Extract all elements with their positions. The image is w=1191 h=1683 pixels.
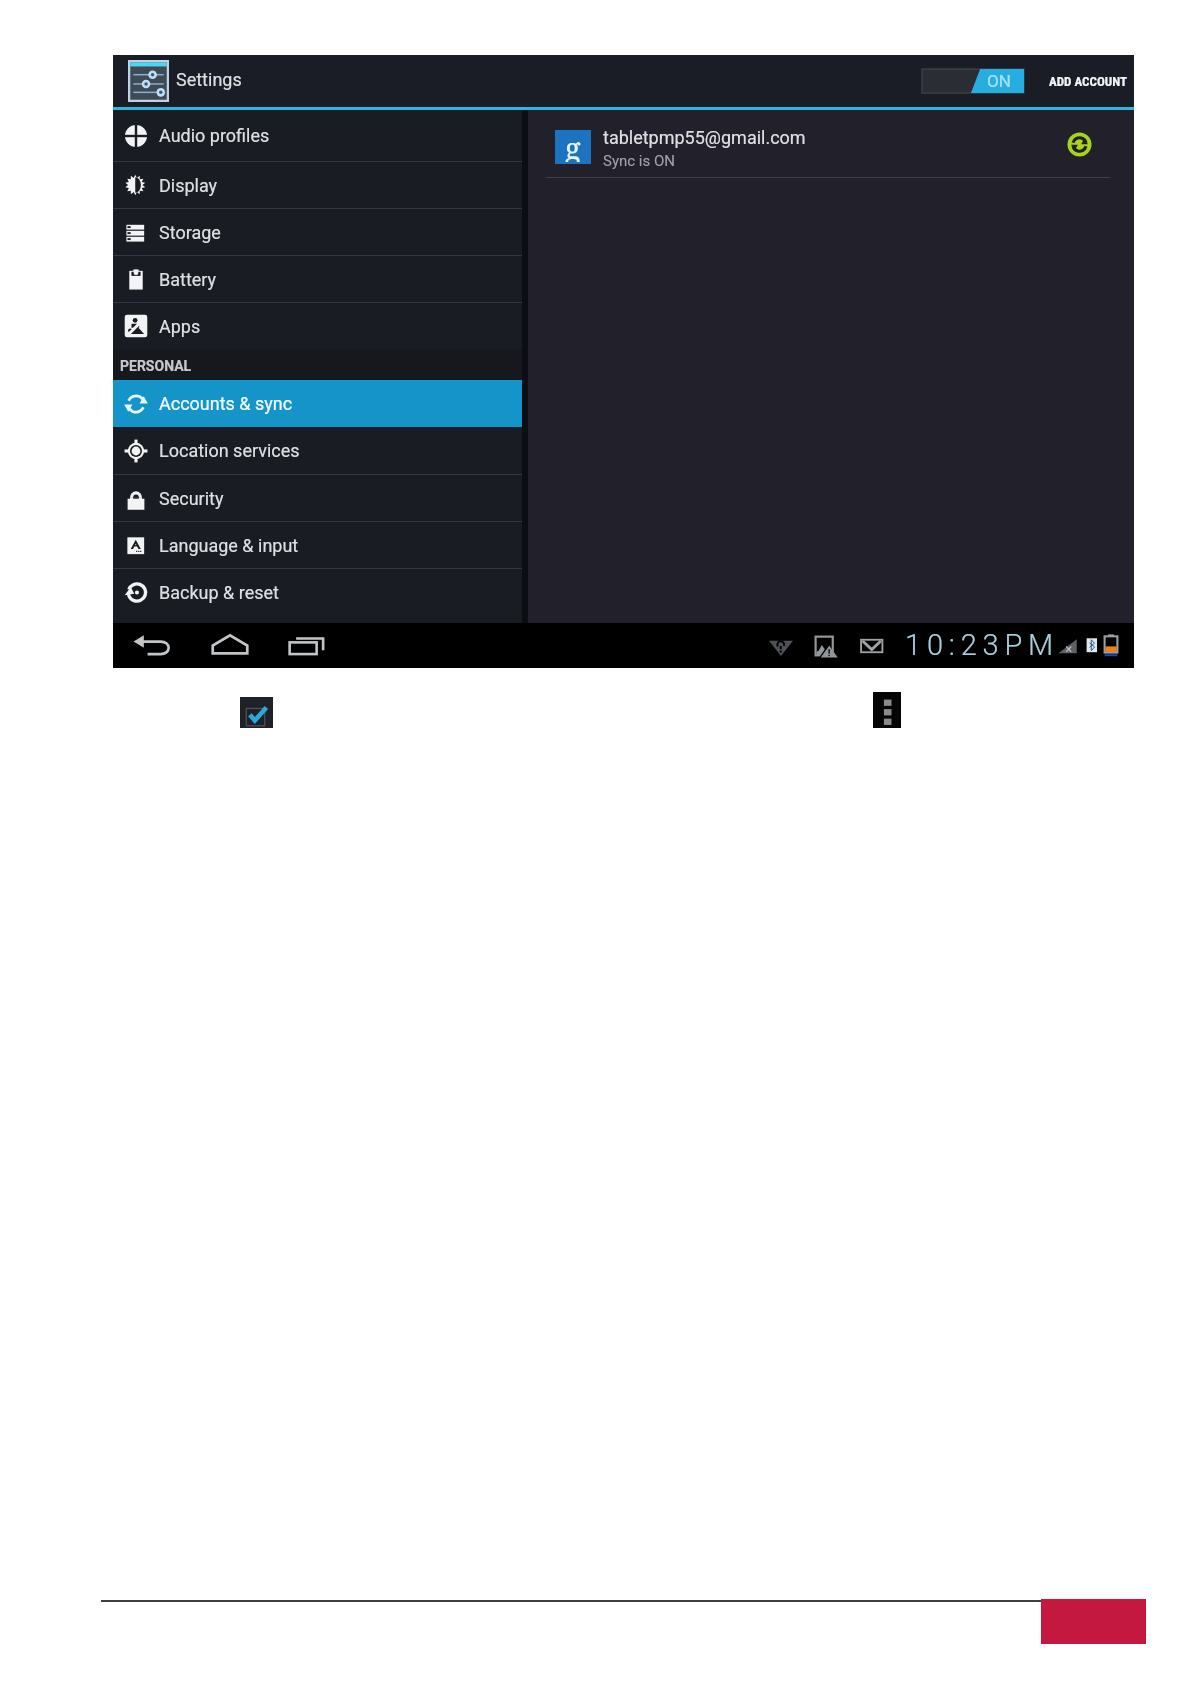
staticText: Security — [159, 488, 224, 509]
button[interactable]: Checkbox checked — [240, 697, 273, 728]
staticText: Settings — [176, 69, 242, 90]
button[interactable]: Settings — [128, 60, 169, 102]
staticText: Language & input — [159, 535, 299, 556]
button[interactable]: Storage — [113, 209, 522, 255]
staticText: ON — [987, 71, 1011, 91]
staticText: g — [565, 128, 581, 162]
staticText: Location services — [159, 440, 300, 461]
staticText: PERSONAL — [120, 358, 192, 374]
button[interactable]: Backup & reset — [113, 569, 522, 615]
staticText: Storage — [159, 222, 221, 243]
button[interactable]: Back — [126, 626, 180, 665]
button[interactable]: More options — [873, 692, 901, 728]
button[interactable] — [546, 123, 1110, 173]
button[interactable]: Audio profiles — [113, 110, 522, 161]
staticText: Battery — [159, 269, 217, 290]
staticText: 10:23PM — [905, 628, 1059, 662]
button[interactable]: Battery — [113, 256, 522, 302]
button[interactable]: Home — [203, 626, 257, 665]
staticText: Display — [159, 175, 218, 196]
button[interactable]: ADD ACCOUNT — [1043, 64, 1135, 98]
staticText: Backup & reset — [159, 582, 279, 603]
button[interactable]: Accounts sync on off switch — [922, 69, 1024, 93]
button[interactable]: Language & input — [113, 522, 522, 568]
button[interactable]: Recent apps — [281, 626, 335, 665]
staticText: Accounts & sync — [159, 393, 293, 414]
staticText: Sync is ON — [603, 152, 675, 170]
button[interactable]: Location services — [113, 427, 522, 474]
button[interactable]: Accounts & sync — [113, 380, 522, 427]
button[interactable]: Apps — [113, 303, 522, 349]
staticText: tabletpmp55@gmail.com — [603, 127, 806, 148]
staticText: Apps — [159, 316, 201, 337]
staticText: Audio profiles — [159, 125, 270, 146]
button[interactable]: Display — [113, 162, 522, 208]
button[interactable]: Security — [113, 475, 522, 521]
